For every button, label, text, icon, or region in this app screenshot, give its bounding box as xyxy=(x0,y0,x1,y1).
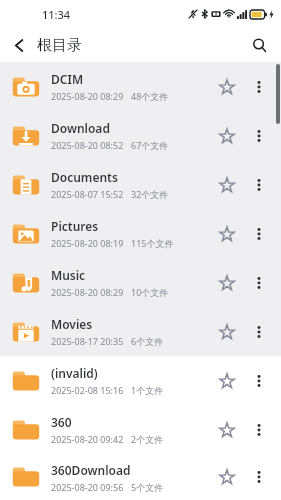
staticText: 2025-08-20 08:29 xyxy=(51,286,124,298)
staticText: 48个文件 xyxy=(131,90,169,102)
staticText: 5个文件 xyxy=(131,481,164,493)
button[interactable]: Favorite xyxy=(210,266,244,300)
staticText: 67个文件 xyxy=(131,139,169,151)
staticText: 360Download xyxy=(51,462,131,478)
button[interactable]: Favorite xyxy=(210,217,244,251)
staticText: 根目录 xyxy=(37,36,82,55)
staticText: Music xyxy=(51,267,86,283)
button[interactable]: Favorite xyxy=(210,315,244,349)
staticText: (invalid) xyxy=(51,365,98,381)
button[interactable]: Favorite xyxy=(210,119,244,153)
staticText: Documents xyxy=(51,169,118,185)
button[interactable]: More options xyxy=(244,462,274,492)
button[interactable]: Favorite xyxy=(210,70,244,104)
button[interactable]: 360Download xyxy=(0,454,281,500)
staticText: 115个文件 xyxy=(131,237,174,249)
button[interactable]: Favorite xyxy=(210,413,244,447)
button[interactable]: More options xyxy=(244,219,274,249)
staticText: 1个文件 xyxy=(131,384,164,396)
staticText: 2025-08-20 08:52 xyxy=(51,139,124,151)
staticText: Pictures xyxy=(51,218,99,234)
button[interactable]: More options xyxy=(244,121,274,151)
button[interactable]: Pictures xyxy=(0,209,281,258)
button[interactable]: (invalid) xyxy=(0,356,281,405)
staticText: 2个文件 xyxy=(131,433,164,445)
staticText: 10个文件 xyxy=(131,286,169,298)
staticText: 360 xyxy=(51,414,72,430)
button[interactable]: Documents xyxy=(0,160,281,209)
staticText: 2025-08-20 09:42 xyxy=(51,433,124,445)
staticText: 6个文件 xyxy=(131,335,164,347)
button[interactable]: Search xyxy=(243,29,275,61)
button[interactable]: Download xyxy=(0,111,281,160)
staticText: Movies xyxy=(51,316,93,332)
button[interactable]: More options xyxy=(244,268,274,298)
staticText: 11:34 xyxy=(42,7,71,22)
button[interactable]: More options xyxy=(244,317,274,347)
button[interactable]: More options xyxy=(244,170,274,200)
staticText: 2025-02-08 15:16 xyxy=(51,384,124,396)
button[interactable]: 360 xyxy=(0,405,281,454)
button[interactable]: Favorite xyxy=(210,168,244,202)
staticText: DCIM xyxy=(51,71,84,87)
button[interactable]: Movies xyxy=(0,307,281,356)
button[interactable]: More options xyxy=(244,366,274,396)
staticText: 2025-08-20 08:19 xyxy=(51,237,124,249)
staticText: Download xyxy=(51,120,110,136)
button[interactable]: DCIM xyxy=(0,62,281,111)
button[interactable]: More options xyxy=(244,415,274,445)
staticText: 2025-08-20 08:29 xyxy=(51,90,124,102)
button[interactable]: More options xyxy=(244,72,274,102)
button[interactable]: Favorite xyxy=(210,364,244,398)
button[interactable]: Favorite xyxy=(210,460,244,494)
button[interactable]: Music xyxy=(0,258,281,307)
button[interactable]: Back xyxy=(3,29,35,61)
staticText: 2025-08-07 15:52 xyxy=(51,188,124,200)
staticText: 2025-08-20 09:56 xyxy=(51,481,124,493)
staticText: 32个文件 xyxy=(131,188,169,200)
staticText: 2025-08-17 20:35 xyxy=(51,335,124,347)
